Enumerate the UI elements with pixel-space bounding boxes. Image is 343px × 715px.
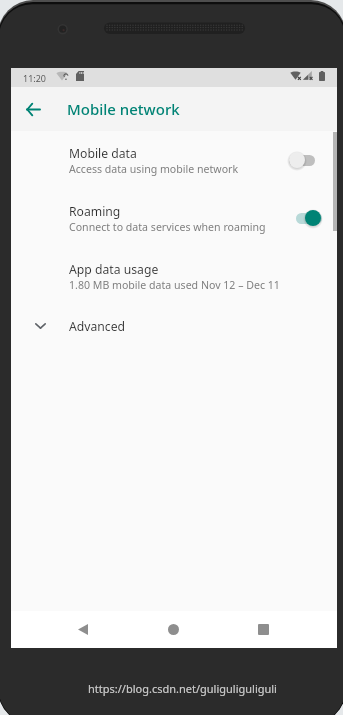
staticText: Advanced: [69, 318, 126, 335]
button[interactable]: Mobile data: [11, 131, 337, 189]
staticText: Roaming: [69, 203, 121, 220]
button[interactable]: Home: [151, 611, 196, 648]
button[interactable]: On: [289, 207, 322, 229]
staticText: App data usage: [69, 261, 159, 278]
button[interactable]: App data usage: [11, 247, 337, 305]
staticText: https://blog.csdn.net/guliguliguliguli: [88, 681, 277, 696]
staticText: Mobile data: [69, 145, 137, 162]
button[interactable]: Recents: [241, 611, 286, 648]
staticText: 1.80 MB mobile data used Nov 12 – Dec 11: [69, 278, 280, 292]
staticText: Connect to data services when roaming: [69, 220, 266, 234]
button[interactable]: Advanced: [11, 305, 337, 347]
staticText: Access data using mobile network: [69, 162, 239, 176]
staticText: 11:20: [23, 72, 47, 84]
button[interactable]: Roaming: [11, 189, 337, 247]
staticText: Mobile network: [67, 99, 180, 119]
button[interactable]: Off: [289, 149, 322, 171]
button[interactable]: Back: [60, 611, 105, 648]
button[interactable]: Back: [18, 94, 48, 124]
